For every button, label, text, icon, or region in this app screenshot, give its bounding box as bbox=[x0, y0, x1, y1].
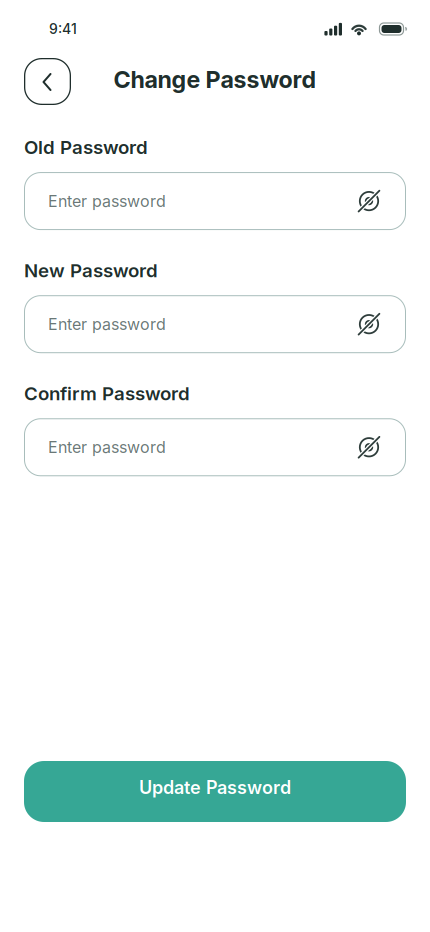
staticText: Old Password bbox=[24, 136, 148, 159]
staticText: 9:41 bbox=[49, 20, 77, 37]
staticText: Confirm Password bbox=[24, 382, 190, 405]
button[interactable]: Show password bbox=[349, 181, 389, 221]
button[interactable]: Back bbox=[24, 58, 71, 105]
button[interactable]: Old Password entry bbox=[24, 172, 406, 230]
staticText: New Password bbox=[24, 259, 158, 282]
button[interactable]: Show password bbox=[349, 304, 389, 344]
staticText: Change Password bbox=[113, 65, 316, 94]
staticText: Enter password bbox=[48, 438, 166, 457]
button[interactable]: Confirm Password entry bbox=[24, 418, 406, 476]
staticText: Enter password bbox=[48, 314, 166, 334]
button[interactable]: Show password bbox=[349, 427, 389, 467]
button[interactable]: Update Password bbox=[24, 761, 406, 822]
button[interactable]: New Password entry bbox=[24, 295, 406, 353]
staticText: Update Password bbox=[139, 777, 291, 798]
staticText: Enter password bbox=[48, 191, 166, 211]
